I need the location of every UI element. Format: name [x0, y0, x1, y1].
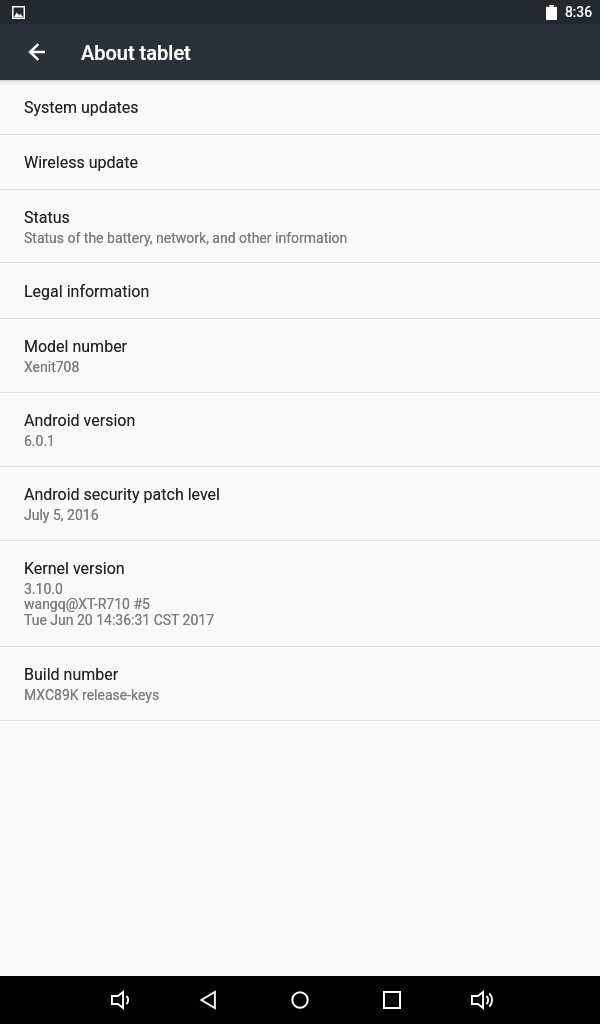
button[interactable]: Volume down [89, 976, 149, 1024]
staticText: Legal information [24, 282, 150, 301]
staticText: System updates [24, 98, 139, 117]
staticText: MXC89K release-keys [24, 687, 160, 703]
button[interactable]: Android security patch level [0, 467, 600, 540]
staticText: Wireless update [24, 153, 138, 172]
button[interactable]: Kernel version [0, 541, 600, 646]
button[interactable]: Home [270, 976, 330, 1024]
staticText: About tablet [81, 41, 191, 64]
button[interactable]: Recent apps [362, 976, 422, 1024]
staticText: 3.10.0 wangq@XT-R710 #5 Tue Jun 20 14:36… [24, 581, 215, 629]
button[interactable]: Status [0, 190, 600, 262]
staticText: Android security patch level [24, 485, 220, 504]
staticText: Model number [24, 337, 128, 356]
button[interactable]: Volume up [449, 976, 509, 1024]
staticText: Status of the battery, network, and othe… [24, 230, 348, 246]
staticText: Android version [24, 411, 136, 430]
button[interactable]: System updates [0, 80, 600, 134]
button[interactable]: Model number [0, 319, 600, 392]
staticText: 6.0.1 [24, 433, 55, 449]
staticText: July 5, 2016 [24, 507, 99, 523]
staticText: Xenit708 [24, 359, 80, 375]
staticText: 8:36 [565, 4, 592, 20]
staticText: Kernel version [24, 559, 125, 578]
staticText: Status [24, 208, 70, 227]
button[interactable]: Android version [0, 393, 600, 466]
button[interactable]: Back [178, 976, 238, 1024]
button[interactable]: Wireless update [0, 135, 600, 189]
button[interactable]: Build number [0, 647, 600, 720]
button[interactable]: Legal information [0, 263, 600, 318]
button[interactable]: Navigate up [21, 36, 53, 68]
staticText: Build number [24, 665, 119, 684]
